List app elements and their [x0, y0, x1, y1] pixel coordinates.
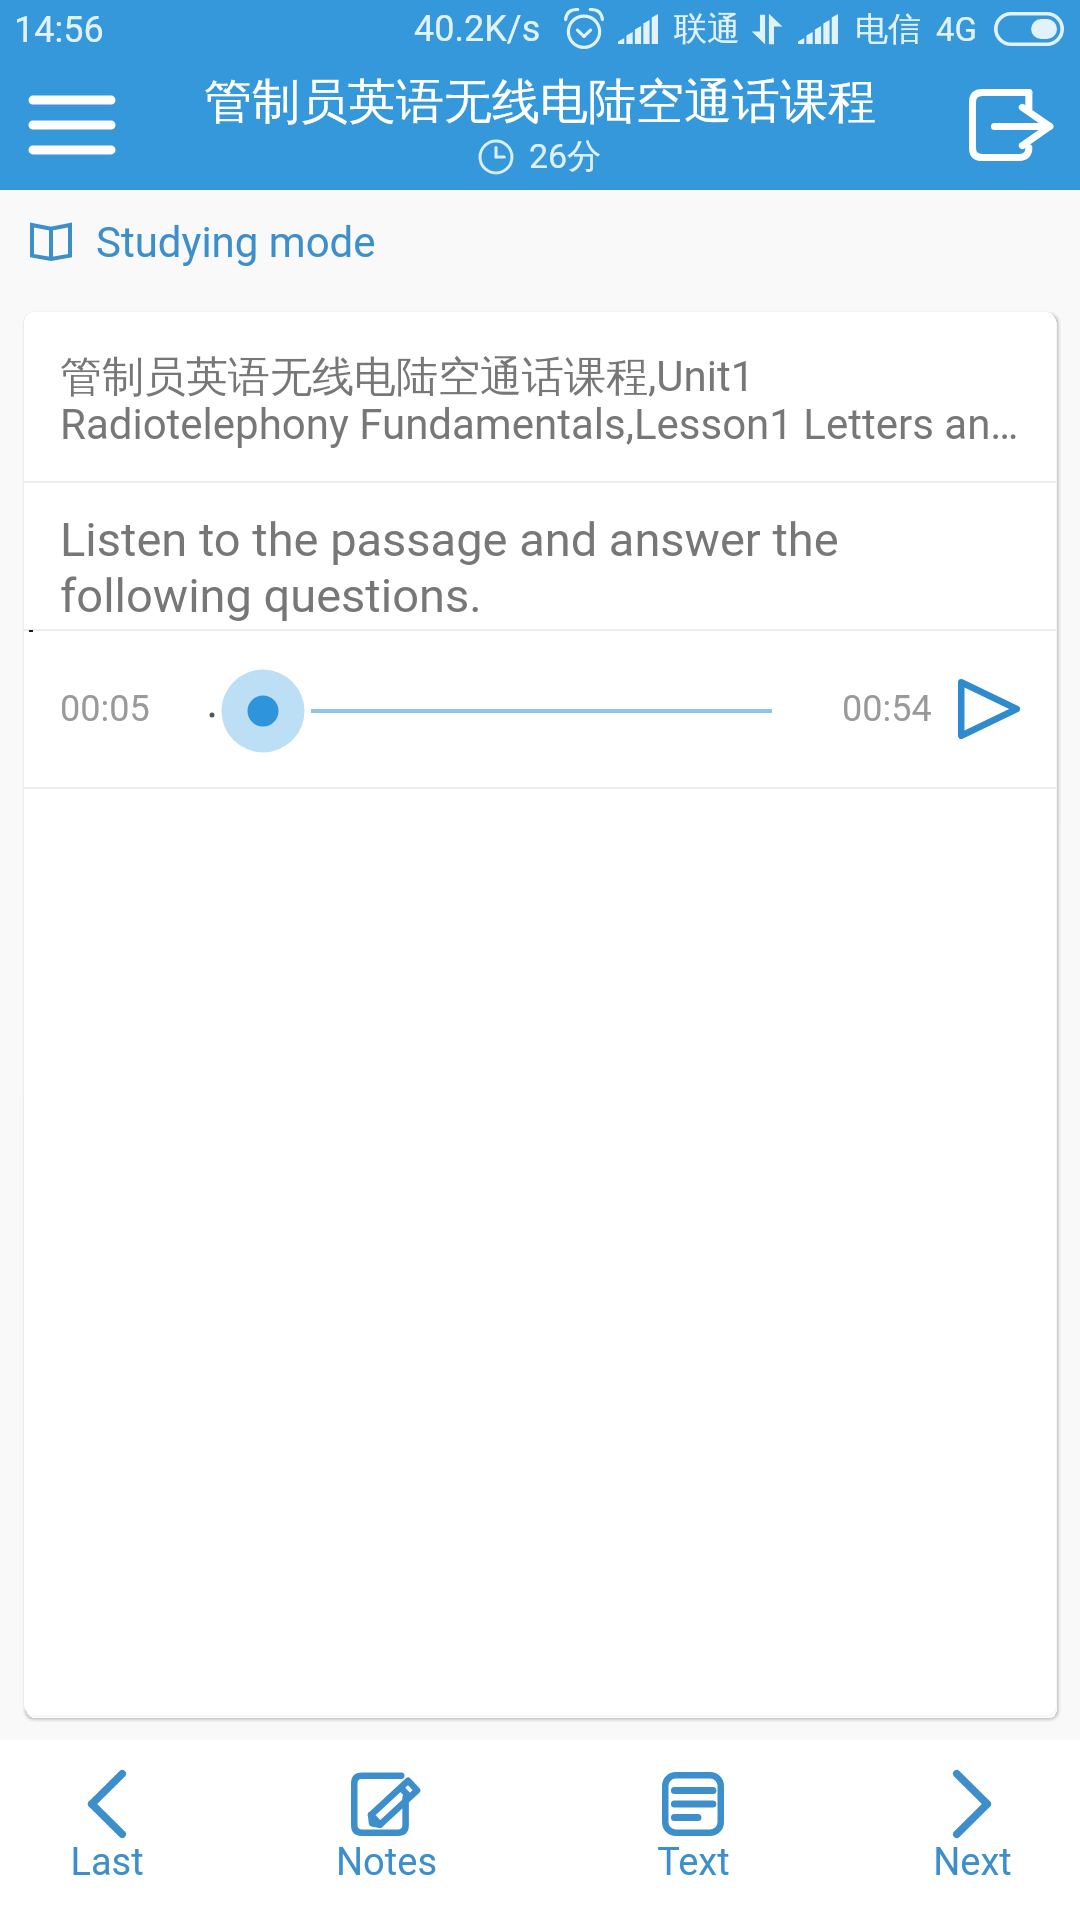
staticText: Next [933, 1840, 1012, 1885]
staticText: 电信 [855, 8, 921, 50]
staticText: 00:05 [60, 688, 150, 730]
staticText: 管制员英语无线电陆空通话课程 [204, 72, 876, 132]
staticText: 4G [936, 10, 978, 49]
button[interactable]: Exit [960, 75, 1060, 175]
button[interactable]: Seek [150, 661, 842, 757]
button[interactable]: Notes [258, 1740, 514, 1920]
staticText: Radiotelephony Fundamentals,Lesson1 Lett… [60, 400, 1019, 449]
staticText: Last [70, 1840, 144, 1885]
button[interactable]: Studying mode [0, 190, 1080, 312]
staticText: 14:56 [14, 9, 104, 51]
staticText: Listen to the passage and answer the fol… [60, 512, 870, 624]
staticText: 00:54 [842, 688, 932, 730]
button[interactable]: Play [946, 666, 1032, 752]
staticText: 管制员英语无线电陆空通话课程,Unit1 [60, 351, 755, 404]
staticText: Text [657, 1840, 730, 1885]
staticText: Notes [336, 1840, 437, 1885]
staticText: 联通 [674, 8, 740, 50]
staticText: 40.2K/s [414, 8, 541, 50]
button[interactable]: Text [565, 1740, 821, 1920]
button[interactable]: Last [0, 1740, 235, 1920]
button[interactable]: Menu [22, 75, 122, 175]
staticText: 26分 [529, 135, 602, 178]
staticText: Studying mode [96, 218, 376, 267]
button[interactable]: Next [844, 1740, 1080, 1920]
